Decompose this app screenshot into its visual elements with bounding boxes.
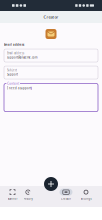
staticText: Email address (7, 51, 24, 55)
button[interactable]: History (18, 186, 38, 203)
staticText: Subject (7, 68, 17, 72)
button[interactable]: Creator (56, 186, 76, 203)
staticText: Support (7, 73, 18, 76)
button[interactable]: Scanner (2, 186, 22, 203)
staticText: History (23, 197, 32, 200)
staticText: I need a support (7, 86, 31, 90)
button[interactable]: Create (43, 176, 59, 192)
staticText: Creator (61, 197, 71, 200)
staticText: Creator (43, 14, 58, 20)
staticText: Content (7, 82, 19, 85)
button[interactable]: Settings (76, 186, 96, 203)
staticText: Settings (80, 197, 91, 200)
staticText: support@placeme.com (7, 56, 37, 59)
staticText: Scanner (7, 197, 17, 200)
staticText: Email address (4, 43, 24, 46)
